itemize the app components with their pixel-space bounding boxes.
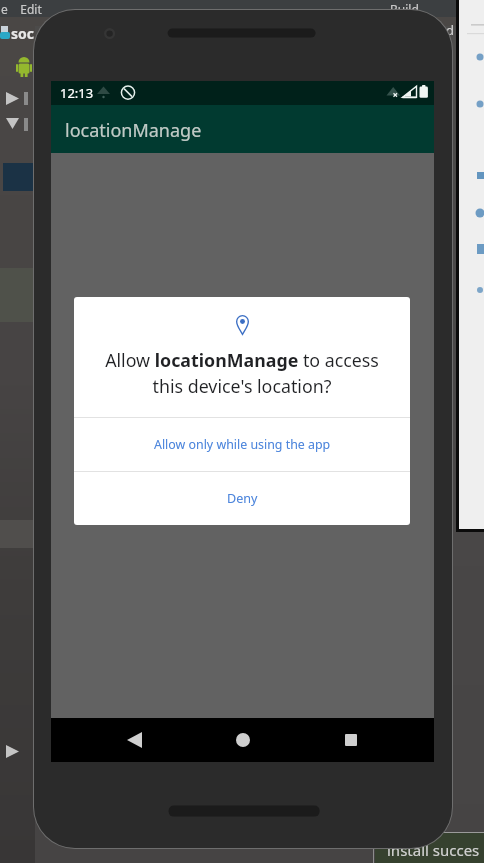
button[interactable]: Deny — [74, 472, 410, 525]
staticText: Deny — [227, 490, 258, 507]
button[interactable]: Allow only while using the app — [74, 418, 410, 471]
staticText: Allow locationManage to access this devi… — [74, 348, 410, 398]
button[interactable]: Home — [218, 718, 268, 762]
staticText: Build — [390, 1, 419, 17]
staticText: e Edit — [1, 1, 42, 17]
staticText: d — [446, 21, 454, 39]
staticText: install succes — [387, 840, 480, 860]
button[interactable]: Back — [109, 718, 159, 762]
staticText: locationManage — [65, 118, 202, 143]
staticText: soc — [11, 24, 35, 43]
staticText: 12:13 — [60, 84, 94, 102]
staticText: Allow only while using the app — [154, 436, 331, 453]
button[interactable]: Recent apps — [326, 718, 376, 762]
